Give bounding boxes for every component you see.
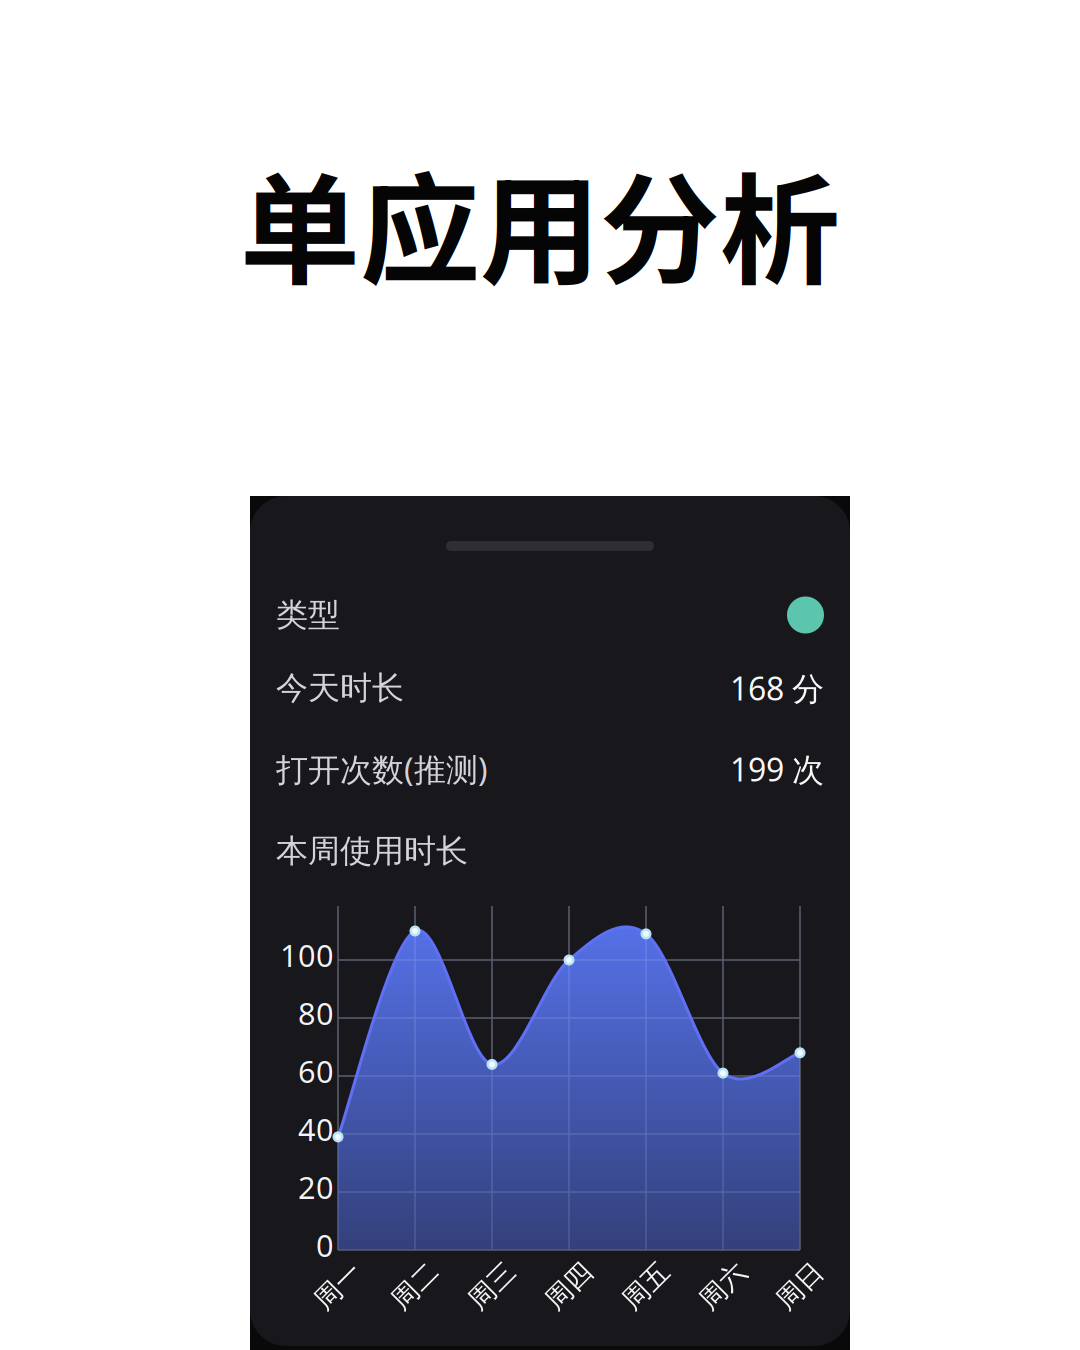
staticText: 20 [298, 1167, 334, 1207]
staticText: 周五 [619, 1270, 673, 1302]
button[interactable]: 本周使用时长 [250, 823, 850, 879]
staticText: 40 [298, 1109, 334, 1149]
staticText: 168 分 [730, 667, 824, 709]
staticText: 0 [316, 1225, 334, 1265]
staticText: 199 次 [730, 748, 824, 790]
staticText: 打开次数(推测) [276, 748, 488, 790]
staticText: 本周使用时长 [276, 831, 468, 871]
staticText: 单应用分析 [240, 135, 840, 309]
button[interactable]: 打开次数(推测) [250, 741, 850, 797]
staticText: 周一 [311, 1270, 365, 1302]
staticText: 100 [280, 935, 334, 975]
staticText: 周日 [773, 1270, 827, 1302]
staticText: 周三 [465, 1270, 519, 1302]
staticText: 80 [298, 993, 334, 1033]
staticText: 今天时长 [276, 668, 404, 708]
button[interactable]: 类型 [250, 578, 850, 652]
button[interactable]: 今天时长 [250, 660, 850, 716]
staticText: 周六 [696, 1270, 750, 1302]
staticText: 类型 [276, 595, 340, 635]
staticText: 周四 [542, 1270, 596, 1302]
staticText: 60 [298, 1051, 334, 1091]
staticText: 周二 [388, 1270, 442, 1302]
